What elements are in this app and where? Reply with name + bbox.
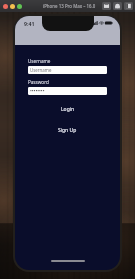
staticText: Login [61, 106, 75, 113]
button[interactable]: Login [28, 105, 107, 113]
staticText: 9:41 [24, 20, 35, 27]
button[interactable]: Screenshot [102, 2, 111, 10]
staticText: •••••••• [30, 88, 45, 95]
button[interactable]: Sign Up [28, 126, 107, 134]
staticText: Sign Up [58, 127, 77, 134]
button[interactable]: Username [28, 66, 107, 74]
button[interactable]: Home [113, 2, 122, 10]
button[interactable]: Zoom [17, 4, 22, 9]
staticText: Username [30, 67, 52, 73]
button[interactable]: Close [3, 4, 8, 9]
button[interactable]: More [124, 2, 133, 10]
staticText: Username [28, 58, 51, 64]
button[interactable]: Minimize [10, 4, 15, 9]
button[interactable]: •••••••• [28, 87, 107, 95]
staticText: iPhone 13 Pro Max – 16.0 [43, 3, 96, 9]
staticText: Password [28, 79, 49, 85]
